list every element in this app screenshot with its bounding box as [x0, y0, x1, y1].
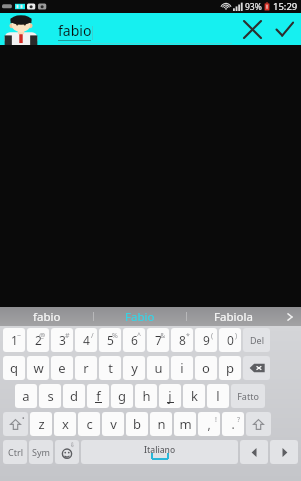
staticText: @ [39, 331, 46, 341]
button[interactable]: 6 [123, 328, 145, 352]
button[interactable]: t [99, 356, 121, 380]
staticText: 93% [245, 1, 262, 13]
button[interactable]: 4 [75, 328, 97, 352]
button[interactable] [240, 440, 268, 464]
staticText: . [231, 416, 235, 432]
button[interactable]: f [87, 384, 109, 408]
button[interactable] [243, 356, 270, 380]
staticText: ! [215, 415, 217, 425]
staticText: 6 [131, 332, 138, 348]
button[interactable]: 3 [51, 328, 73, 352]
staticText: q [10, 359, 18, 377]
button[interactable]: Fabio [94, 307, 186, 326]
staticText: g [118, 387, 126, 405]
button[interactable]: 8 [171, 328, 193, 352]
staticText: s [47, 387, 54, 405]
button[interactable]: ⇩ [55, 440, 79, 464]
button[interactable] [270, 440, 298, 464]
staticText: 4 [83, 332, 90, 348]
button[interactable]: 1 [3, 328, 25, 352]
staticText: r [83, 359, 89, 377]
button[interactable]: Space, Italiano [81, 440, 238, 464]
button[interactable]: e [51, 356, 73, 380]
button[interactable]: s [39, 384, 61, 408]
staticText: Fabio [125, 309, 155, 325]
button[interactable]: Sym [29, 440, 53, 464]
staticText: # [65, 331, 70, 341]
staticText: i [180, 359, 184, 377]
button[interactable]: . [222, 412, 244, 436]
button[interactable]: m [174, 412, 196, 436]
staticText: j [168, 387, 172, 405]
staticText: b [133, 415, 141, 433]
button[interactable]: Confirm [270, 15, 298, 43]
staticText: v [110, 415, 117, 433]
button[interactable]: h [135, 384, 157, 408]
button[interactable]: Del [243, 328, 270, 352]
staticText: ⇩ [70, 441, 76, 448]
button[interactable]: o [195, 356, 217, 380]
button[interactable]: j [159, 384, 181, 408]
staticText: z [38, 415, 45, 433]
staticText: a [22, 387, 30, 405]
button[interactable]: y [123, 356, 145, 380]
button[interactable]: 7 [147, 328, 169, 352]
staticText: 7 [155, 332, 162, 348]
staticText: , [207, 416, 211, 432]
staticText: 1 [11, 332, 18, 348]
button[interactable]: a [15, 384, 37, 408]
button[interactable]: r [75, 356, 97, 380]
staticText: Del [250, 334, 264, 346]
staticText: ) [235, 331, 238, 341]
button[interactable]: k [183, 384, 205, 408]
button[interactable]: u [147, 356, 169, 380]
button[interactable]: 5 [99, 328, 121, 352]
staticText: ^ [137, 331, 142, 341]
button[interactable]: v [102, 412, 124, 436]
button[interactable]: 9 [195, 328, 217, 352]
staticText: 0 [227, 332, 234, 348]
staticText: l [216, 387, 220, 405]
button[interactable]: • [3, 412, 28, 436]
staticText: 5 [107, 332, 114, 348]
button[interactable]: fabio [0, 307, 93, 326]
button[interactable]: p [219, 356, 241, 380]
staticText: t [108, 359, 113, 377]
staticText: k [191, 387, 198, 405]
button[interactable]: More suggestions [279, 307, 301, 326]
staticText: * [186, 331, 190, 341]
button[interactable]: 2 [27, 328, 49, 352]
staticText: % [112, 331, 118, 341]
button[interactable]: q [3, 356, 25, 380]
button[interactable]: n [150, 412, 172, 436]
staticText: / [91, 331, 94, 341]
button[interactable]: Cancel [238, 15, 266, 43]
button[interactable]: Fabiola [187, 307, 279, 326]
button[interactable]: w [27, 356, 49, 380]
staticText: 3 [59, 332, 66, 348]
staticText: & [160, 331, 166, 341]
button[interactable]: c [78, 412, 100, 436]
staticText: 9 [203, 332, 210, 348]
button[interactable]: , [198, 412, 220, 436]
staticText: e [58, 359, 66, 377]
staticText: Italiano [144, 444, 176, 456]
button[interactable] [246, 412, 271, 436]
staticText: x [62, 415, 69, 433]
button[interactable]: l [207, 384, 229, 408]
button[interactable]: i [171, 356, 193, 380]
button[interactable]: b [126, 412, 148, 436]
button[interactable]: x [54, 412, 76, 436]
staticText: Fatto [237, 390, 259, 402]
staticText: Fabiola [214, 309, 253, 325]
button[interactable]: d [63, 384, 85, 408]
staticText: fabio [33, 309, 61, 325]
staticText: 8 [179, 332, 186, 348]
button[interactable]: Ctrl [3, 440, 27, 464]
staticText: ( [211, 331, 214, 341]
button[interactable]: Contact avatar [2, 13, 40, 45]
button[interactable]: g [111, 384, 133, 408]
button[interactable]: 0 [219, 328, 241, 352]
button[interactable]: z [30, 412, 52, 436]
button[interactable]: Fatto [231, 384, 265, 408]
